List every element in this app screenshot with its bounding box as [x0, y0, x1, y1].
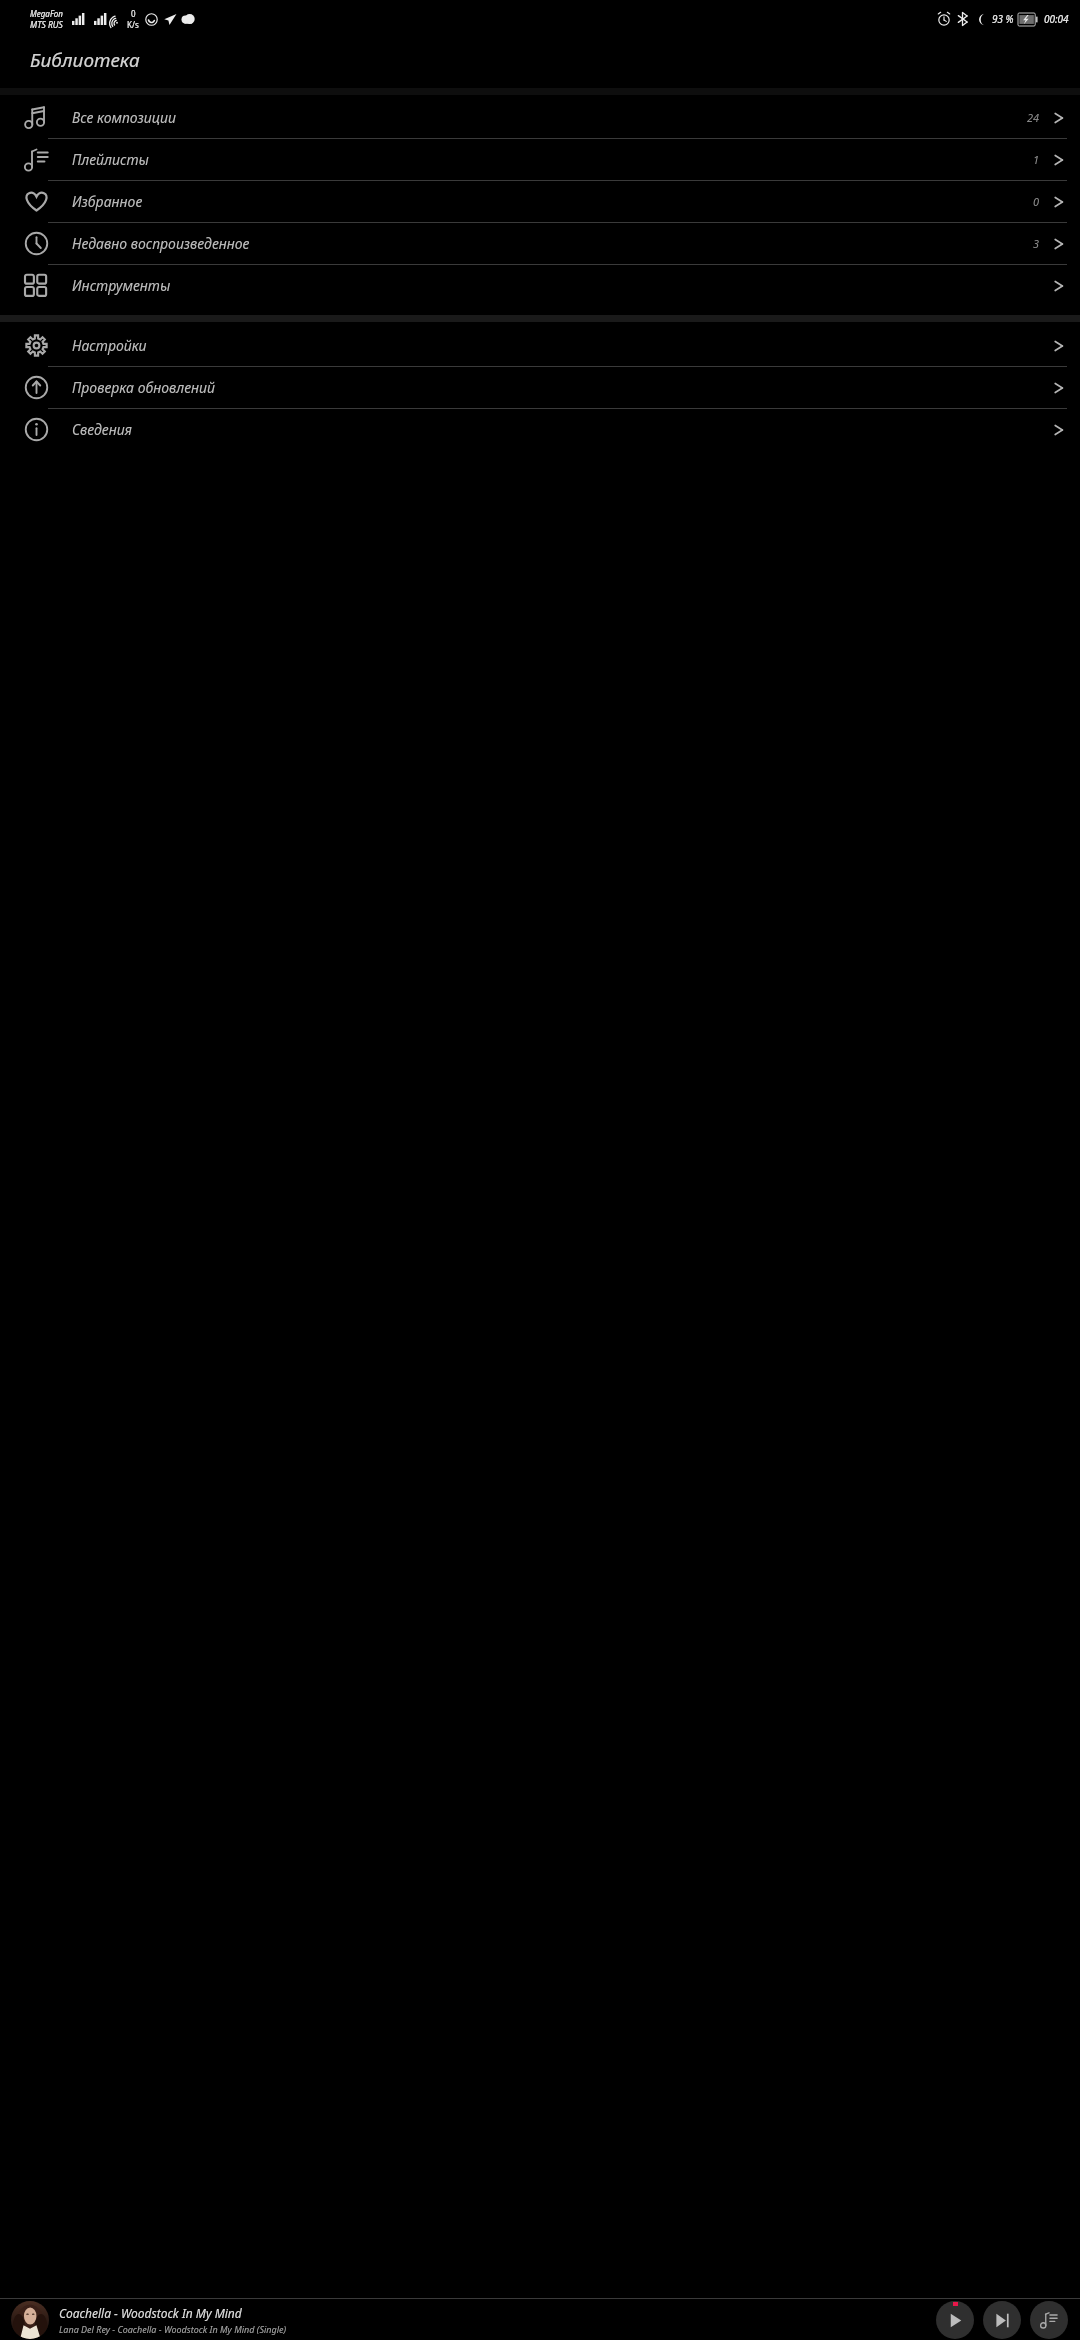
button[interactable]: Плейлисты [0, 139, 1080, 180]
staticText: K/s [127, 19, 139, 30]
staticText: Настройки [72, 336, 1051, 355]
staticText: 00:04 [1044, 12, 1069, 26]
staticText: Плейлисты [72, 150, 1033, 169]
button[interactable]: Play [936, 2301, 974, 2339]
staticText: 3 [1033, 236, 1040, 251]
staticText: 0 [1033, 194, 1040, 209]
button[interactable]: Настройки [0, 325, 1080, 366]
button[interactable]: Инструменты [0, 265, 1080, 306]
staticText: Проверка обновлений [72, 378, 1051, 397]
staticText: MTS RUS [30, 19, 63, 31]
staticText: Сведения [72, 420, 1051, 439]
staticText: MegaFon [30, 8, 63, 19]
button[interactable]: Next [983, 2301, 1021, 2339]
button[interactable]: Недавно воспроизведенное [0, 223, 1080, 264]
staticText: Инструменты [72, 276, 1051, 295]
button[interactable]: Избранное [0, 181, 1080, 222]
button[interactable]: Queue [1030, 2301, 1068, 2339]
staticText: 1 [1033, 152, 1040, 167]
button[interactable]: Все композиции [0, 97, 1080, 138]
staticText: Библиотека [30, 47, 140, 73]
button[interactable]: Сведения [0, 409, 1080, 450]
staticText: Избранное [72, 192, 1033, 211]
staticText: Lana Del Rey - Coachella - Woodstock In … [59, 2323, 287, 2335]
staticText: 93 % [992, 12, 1014, 26]
staticText: 24 [1027, 110, 1040, 125]
staticText: Все композиции [72, 108, 1027, 127]
staticText: Coachella - Woodstock In My Mind [59, 2305, 242, 2321]
button[interactable]: Проверка обновлений [0, 367, 1080, 408]
staticText: Недавно воспроизведенное [72, 234, 1033, 253]
staticText: 0 [131, 8, 136, 19]
button[interactable]: Album art [11, 2301, 49, 2339]
